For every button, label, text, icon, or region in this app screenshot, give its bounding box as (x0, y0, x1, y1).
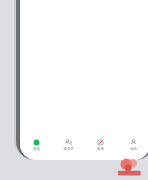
staticText: 首页 (33, 147, 40, 151)
staticText: 我的 (130, 147, 137, 151)
button[interactable]: 我的 (117, 138, 148, 151)
staticText: 发现 (97, 147, 104, 151)
button[interactable]: 发现 (84, 138, 117, 151)
button[interactable]: 通讯录 (52, 138, 84, 151)
staticText: 通讯录 (63, 147, 74, 151)
button[interactable]: 首页 (20, 138, 52, 151)
